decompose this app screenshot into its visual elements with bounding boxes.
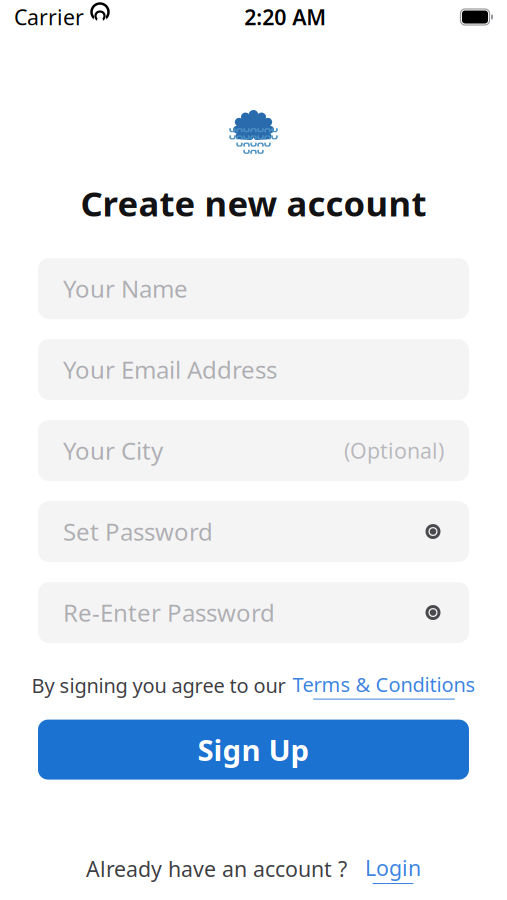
button[interactable]: Re-Enter Password: [38, 582, 469, 643]
staticText: By signing you agree to our: [31, 672, 285, 699]
staticText: Set Password: [63, 516, 213, 547]
staticText: Terms & Conditions: [292, 671, 475, 698]
staticText: Your City: [63, 435, 163, 466]
button[interactable]: Login: [365, 854, 421, 884]
button[interactable]: Sign Up: [38, 720, 469, 780]
button[interactable]: Your Email Address: [38, 339, 469, 400]
staticText: Create new account: [80, 180, 426, 226]
staticText: Your Email Address: [63, 354, 277, 385]
button[interactable]: Your City: [38, 420, 469, 481]
button[interactable]: Set Password: [38, 501, 469, 562]
staticText: Sign Up: [197, 730, 309, 769]
staticText: Your Name: [63, 273, 188, 304]
staticText: Re-Enter Password: [63, 597, 275, 628]
staticText: Already have an account ?: [86, 855, 347, 883]
staticText: Carrier: [14, 3, 84, 31]
staticText: 2:20 AM: [244, 3, 326, 31]
button[interactable]: Your Name: [38, 258, 469, 319]
staticText: (Optional): [344, 436, 444, 465]
button[interactable]: Terms & Conditions: [292, 671, 475, 700]
staticText: Login: [365, 854, 421, 882]
